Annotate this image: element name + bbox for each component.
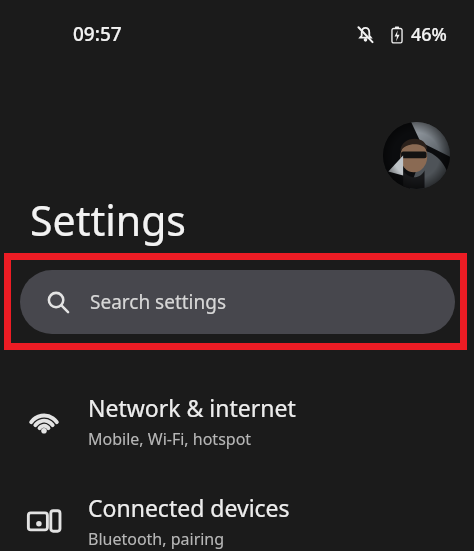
staticText: Search settings xyxy=(90,289,227,315)
button[interactable]: Search settings xyxy=(20,270,455,334)
button[interactable]: Connected devices xyxy=(0,471,474,551)
staticText: Bluetooth, pairing xyxy=(88,528,225,550)
staticText: Connected devices xyxy=(88,492,290,523)
button[interactable]: Network & internet xyxy=(0,371,474,471)
staticText: Mobile, Wi-Fi, hotspot xyxy=(88,428,252,450)
staticText: Settings xyxy=(30,192,187,248)
button[interactable]: Account profile photo xyxy=(383,122,450,189)
staticText: 09:57 xyxy=(73,21,122,47)
staticText: Network & internet xyxy=(88,392,296,423)
staticText: 46% xyxy=(411,22,447,47)
